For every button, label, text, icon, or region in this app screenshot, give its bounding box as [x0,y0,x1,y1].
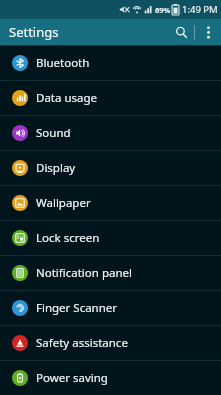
staticText: Bluetooth [36,55,90,71]
button[interactable]: Wallpaper [0,186,221,220]
staticText: Display [36,160,76,176]
button[interactable]: Notification panel [0,256,221,290]
staticText: Data usage [36,90,98,106]
staticText: Wallpaper [36,195,91,211]
staticText: Sound [36,125,71,141]
button[interactable]: Data usage [0,81,221,115]
staticText: Power saving [36,370,108,386]
button[interactable]: Search [168,19,194,45]
button[interactable]: More options [195,19,221,45]
button[interactable]: Display [0,151,221,185]
staticText: Lock screen [36,230,100,246]
staticText: 69% [155,5,171,15]
staticText: Settings [9,23,59,41]
staticText: Safety assistance [36,335,128,351]
staticText: Notification panel [36,265,132,281]
button[interactable]: Sound [0,116,221,150]
button[interactable]: Power saving [0,361,221,395]
button[interactable]: Lock screen [0,221,221,255]
button[interactable]: Bluetooth [0,46,221,80]
button[interactable]: Safety assistance [0,326,221,360]
staticText: 1:49 PM [182,3,218,16]
staticText: Finger Scanner [36,300,118,316]
button[interactable]: Finger Scanner [0,291,221,325]
